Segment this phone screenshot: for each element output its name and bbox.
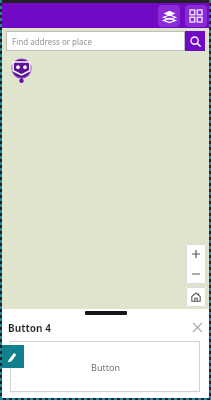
button[interactable]: Apps [185,5,207,27]
button[interactable]: Zoom in [186,244,206,264]
staticText: Find address or place [12,36,92,47]
button[interactable]: Search [185,31,205,51]
button[interactable]: Map marker [12,59,31,83]
button[interactable]: Layers [158,5,180,27]
button[interactable]: Find address or place [6,31,185,51]
staticText: Button [91,361,120,373]
button[interactable] [85,311,127,315]
button[interactable]: Button [10,341,200,392]
button[interactable]: Zoom out [186,264,206,284]
button[interactable]: Close [188,318,206,336]
staticText: Button 4 [8,321,51,335]
button[interactable]: Edit [0,345,24,368]
button[interactable]: Home [186,287,206,307]
